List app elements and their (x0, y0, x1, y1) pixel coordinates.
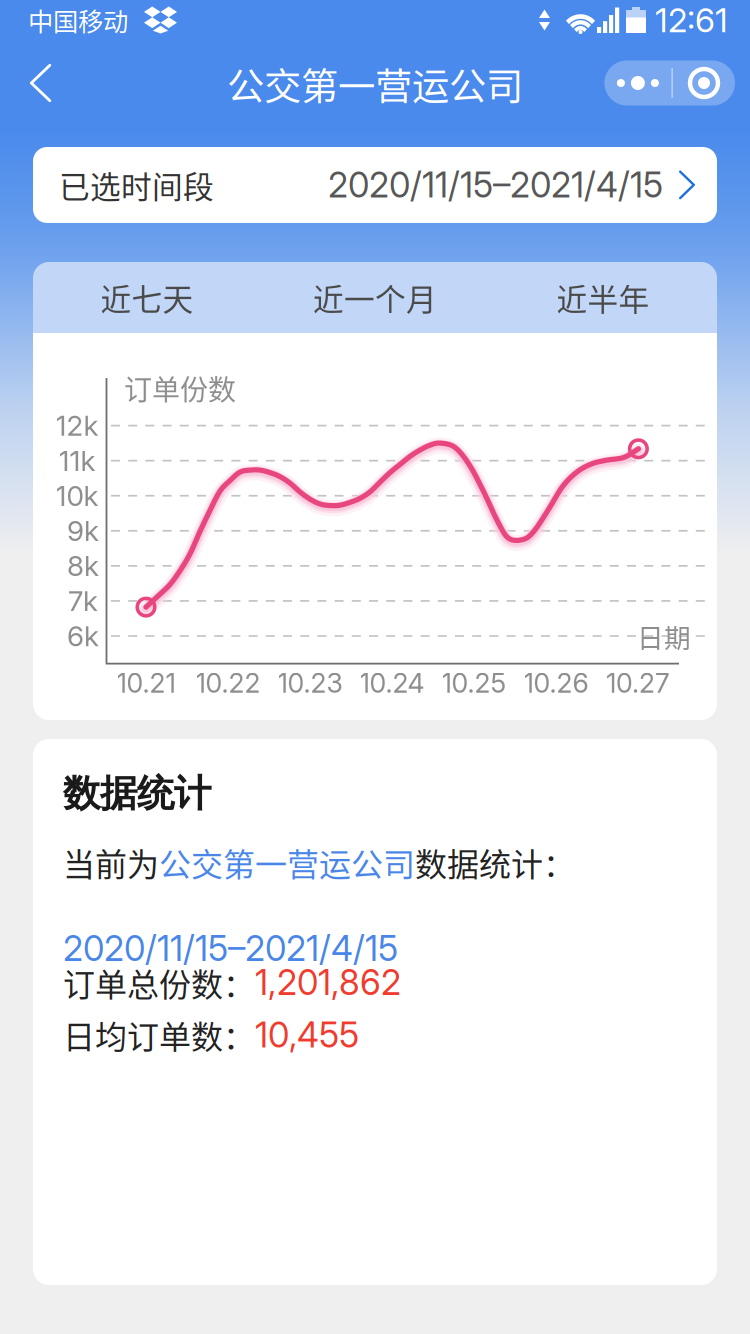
staticText: 8k (67, 549, 99, 583)
staticText: 日均订单数： (63, 1012, 255, 1058)
staticText: 12:61 (655, 0, 728, 40)
staticText: 中国移动 (28, 2, 128, 38)
staticText: 数据统计： (415, 839, 575, 885)
staticText: 2020/11/15–2021/4/15 (63, 927, 398, 969)
staticText: 10.21 (116, 667, 175, 699)
staticText: 10.24 (359, 667, 424, 699)
staticText: 6k (67, 619, 99, 653)
staticText: 9k (67, 514, 99, 548)
staticText: 公交第一营运公司 (159, 839, 415, 885)
staticText: 近七天 (100, 275, 193, 320)
staticText: 日期 (637, 617, 691, 656)
staticText: 已选时间段 (59, 163, 214, 207)
staticText: 10.25 (441, 667, 506, 699)
staticText: 1,201,862 (255, 961, 401, 1003)
staticText: 订单总份数： (63, 959, 255, 1006)
staticText: 订单份数 (124, 368, 236, 408)
staticText: 当前为 (63, 839, 159, 885)
staticText: 7k (68, 584, 98, 618)
button[interactable]: 近半年 (489, 262, 717, 333)
staticText: 10.22 (195, 667, 260, 699)
staticText: 11k (58, 444, 95, 478)
staticText: 10.23 (277, 667, 342, 699)
button[interactable]: More options (604, 60, 671, 105)
staticText: 10k (55, 479, 98, 513)
staticText: 近半年 (556, 275, 649, 320)
button[interactable]: Back (0, 45, 75, 121)
staticText: 公交第一营运公司 (227, 57, 523, 111)
staticText: 12k (55, 409, 98, 443)
staticText: 2020/11/15–2021/4/15 (328, 164, 663, 206)
staticText: 10.26 (523, 667, 588, 699)
button[interactable]: 近一个月 (261, 262, 489, 333)
staticText: 10.27 (606, 667, 670, 699)
button[interactable]: 已选时间段 (33, 147, 717, 223)
button[interactable]: 近七天 (33, 262, 261, 333)
button[interactable]: Close mini program (673, 60, 735, 105)
staticText: 10,455 (255, 1014, 359, 1056)
staticText: 近一个月 (313, 275, 437, 320)
staticText: 数据统计 (63, 770, 211, 817)
